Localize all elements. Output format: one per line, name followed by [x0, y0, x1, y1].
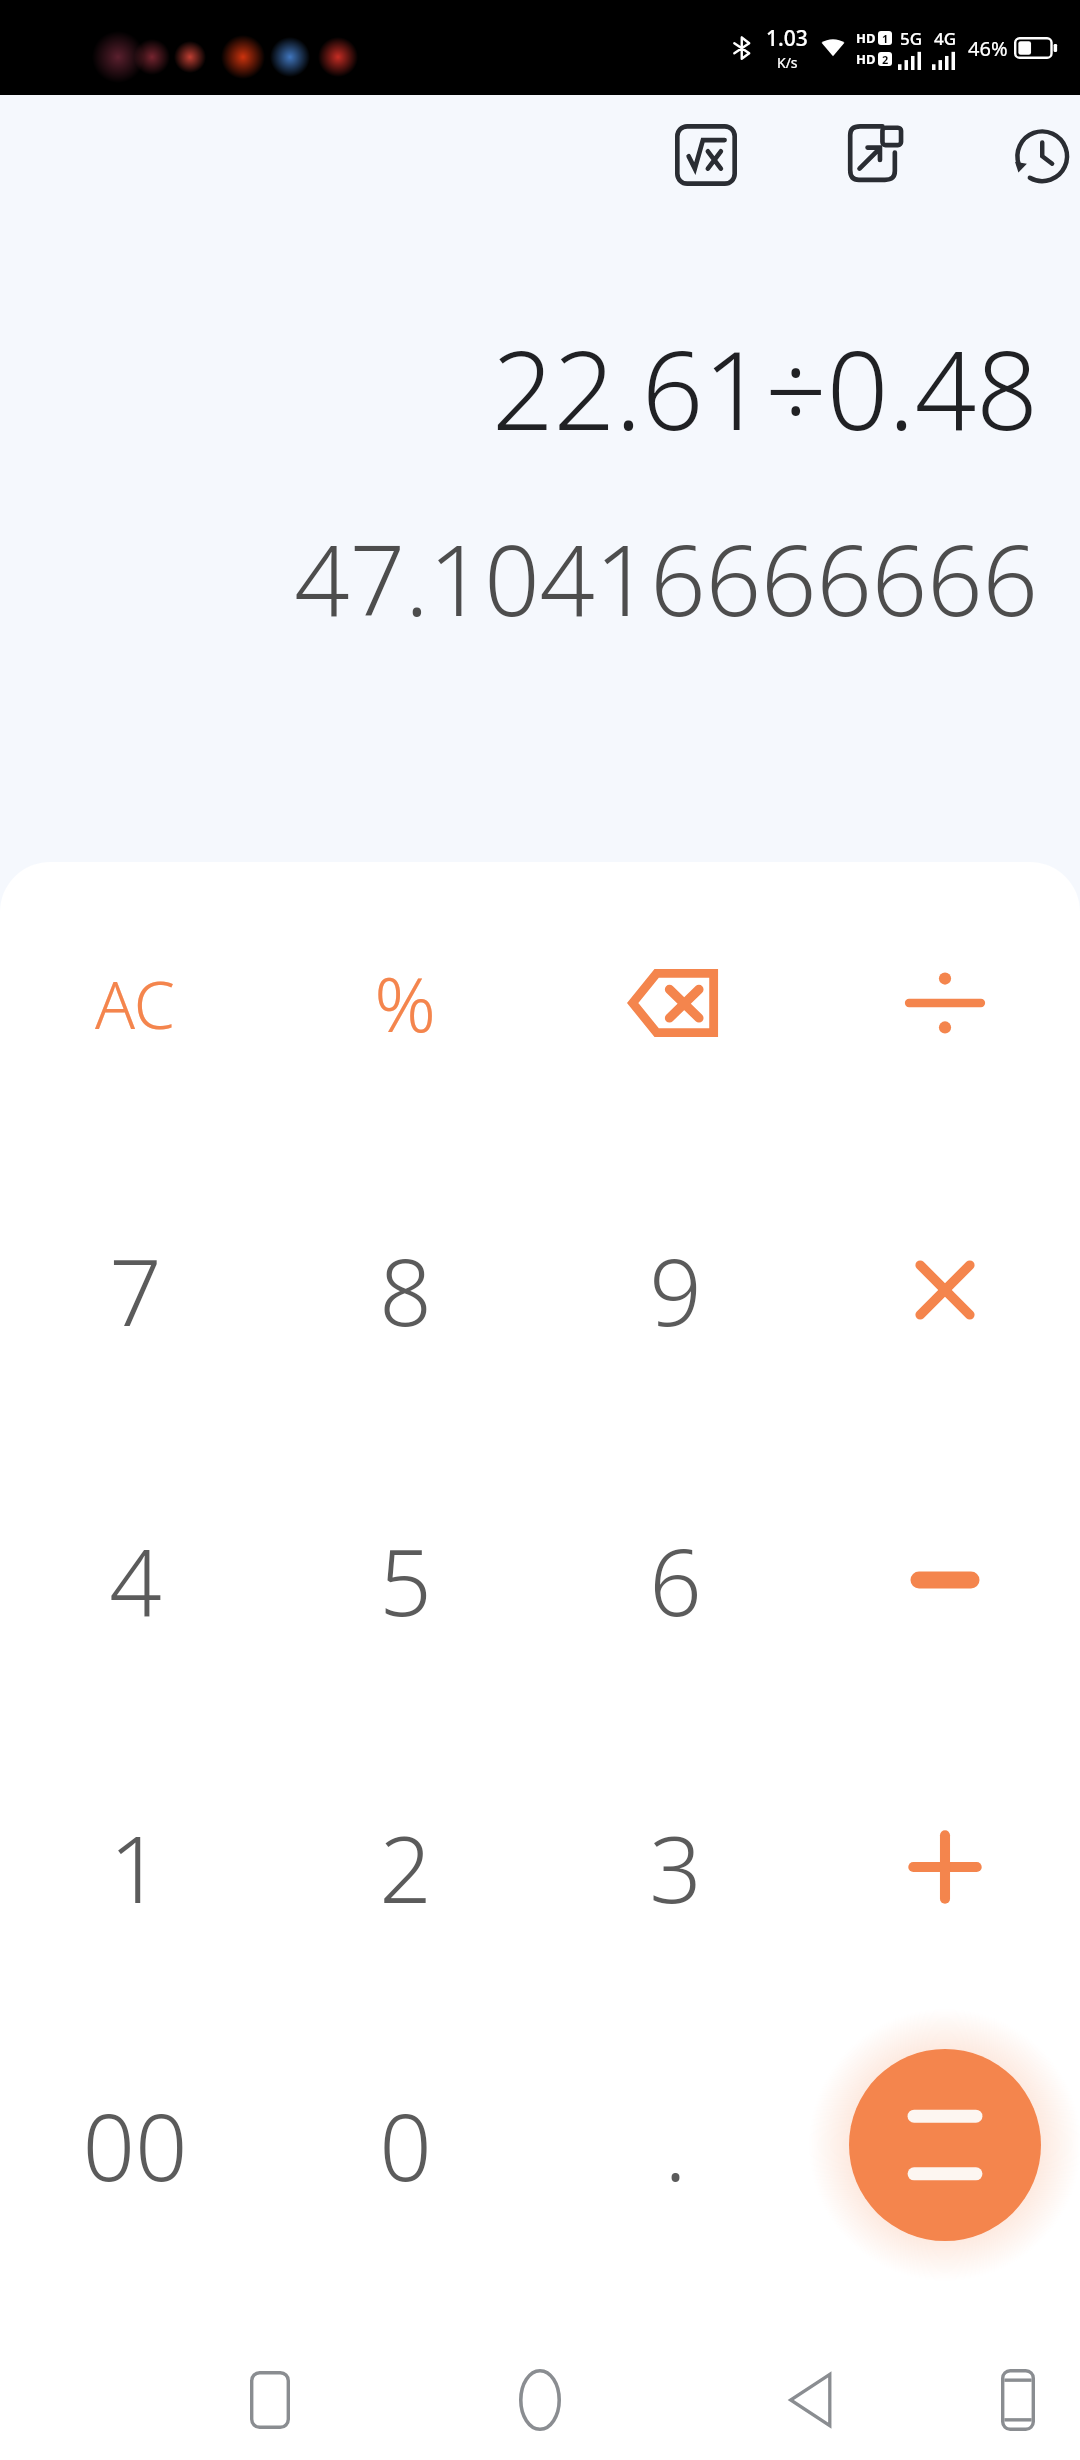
button[interactable]: 7 [10, 1190, 260, 1390]
button[interactable]: Floating window [832, 112, 918, 198]
staticText: HD [856, 29, 876, 47]
staticText: 0 [379, 2083, 432, 2208]
staticText: 1.03 [766, 24, 808, 53]
staticText: AC [95, 958, 175, 1048]
button[interactable]: History [1001, 112, 1080, 198]
button[interactable]: Home [480, 2340, 600, 2460]
button[interactable]: 5 [280, 1480, 530, 1680]
button[interactable]: % [280, 903, 530, 1103]
button[interactable]: 4 [10, 1480, 260, 1680]
button[interactable]: Scientific calculator [663, 112, 749, 198]
button[interactable]: . [550, 2045, 800, 2245]
staticText: . [664, 2083, 687, 2208]
staticText: HD [856, 50, 876, 68]
staticText: 2 [379, 1805, 432, 1930]
button[interactable]: Split screen [958, 2340, 1078, 2460]
button[interactable]: Backspace [550, 903, 800, 1103]
button[interactable]: 9 [550, 1190, 800, 1390]
staticText: 47.10416666666 [0, 512, 1038, 644]
button[interactable]: Equals [805, 2005, 1080, 2285]
staticText: 3 [649, 1805, 702, 1930]
staticText: 6 [649, 1518, 702, 1643]
button[interactable]: Minus [820, 1480, 1070, 1680]
staticText: 2 [882, 52, 889, 66]
staticText: 46% [968, 35, 1008, 62]
button[interactable]: Plus [820, 1767, 1070, 1967]
button[interactable]: 0 [280, 2045, 530, 2245]
button[interactable]: AC [10, 903, 260, 1103]
staticText: 5G [900, 27, 923, 50]
staticText: 1 [109, 1805, 162, 1930]
button[interactable]: Divide [820, 903, 1070, 1103]
staticText: 7 [109, 1228, 162, 1353]
button[interactable]: Multiply [820, 1190, 1070, 1390]
button[interactable]: 6 [550, 1480, 800, 1680]
staticText: 22.61÷0.48 [0, 315, 1038, 462]
button[interactable]: 3 [550, 1767, 800, 1967]
button[interactable]: 2 [280, 1767, 530, 1967]
staticText: % [374, 951, 436, 1055]
button[interactable]: Recents [210, 2340, 330, 2460]
staticText: 1 [882, 31, 889, 45]
staticText: 8 [379, 1228, 432, 1353]
staticText: 4 [109, 1518, 162, 1643]
button[interactable]: 00 [10, 2045, 260, 2245]
staticText: 4G [934, 27, 957, 50]
staticText: 5 [379, 1518, 432, 1643]
staticText: 9 [649, 1228, 702, 1353]
staticText: 00 [82, 2083, 188, 2208]
button[interactable]: 8 [280, 1190, 530, 1390]
button[interactable]: 1 [10, 1767, 260, 1967]
staticText: K/s [777, 53, 798, 72]
button[interactable]: Back [750, 2340, 870, 2460]
